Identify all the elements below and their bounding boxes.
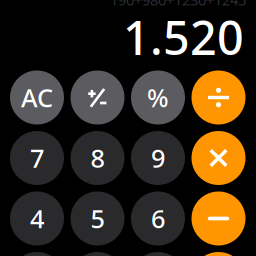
button[interactable]: 1 [10,252,64,256]
staticText: 1.520 [123,6,244,68]
staticText: 5 [90,202,104,235]
staticText: 8 [90,141,104,175]
button[interactable]: 6 [131,191,185,245]
button[interactable]: AC [10,70,64,124]
staticText: % [147,81,169,114]
staticText: AC [21,81,53,114]
button[interactable]: 4 [10,191,64,245]
button[interactable]: Plus [191,252,245,256]
button[interactable]: 2 [70,252,124,256]
button[interactable]: Minus [191,191,245,245]
staticText: 6 [151,202,165,235]
button[interactable]: 5 [70,191,124,245]
staticText: 7 [30,141,44,175]
button[interactable]: 3 [131,252,185,256]
button[interactable]: Plus minus [70,70,124,124]
button[interactable]: Multiply [191,131,245,185]
button[interactable]: 7 [10,131,64,185]
staticText: 4 [30,202,44,235]
button[interactable]: 9 [131,131,185,185]
button[interactable]: Divide [191,70,245,124]
button[interactable]: 8 [70,131,124,185]
staticText: 9 [151,141,165,175]
staticText: 190+980+1230+1245 [110,0,246,9]
button[interactable]: % [131,70,185,124]
